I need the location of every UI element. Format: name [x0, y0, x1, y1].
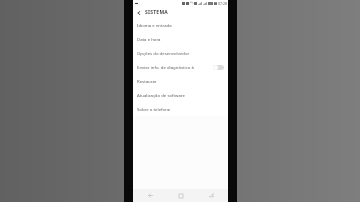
staticText: Opções do desenvolvedor	[137, 50, 190, 56]
staticText: Restaurar	[137, 78, 157, 84]
button[interactable]: Opções do desenvolvedor	[133, 46, 228, 60]
button[interactable]: Idioma e entrada	[133, 18, 228, 32]
button[interactable]: Sobre o telefone	[133, 102, 228, 116]
button[interactable]: Back	[135, 9, 143, 17]
staticText: Sobre o telefone	[137, 106, 171, 112]
staticText: Data e hora	[137, 36, 161, 42]
staticText: SISTEMA	[145, 9, 169, 16]
button[interactable]: Back	[136, 189, 164, 202]
button[interactable]: Restaurar	[133, 74, 228, 88]
staticText: Enviar info. de diagnóstico à Samsung	[137, 64, 213, 70]
button[interactable]: Atualização de software	[133, 88, 228, 102]
button[interactable]: Enviar info. de diagnóstico à Samsung	[133, 60, 228, 74]
button[interactable]: Enviar informações de diagnóstico	[213, 65, 224, 70]
button[interactable]: Data e hora	[133, 32, 228, 46]
button[interactable]: Recents	[197, 189, 225, 202]
staticText: 07:28	[218, 1, 227, 6]
button[interactable]: Home	[167, 189, 195, 202]
staticText: Atualização de software	[137, 92, 185, 98]
staticText: Idioma e entrada	[137, 22, 172, 28]
